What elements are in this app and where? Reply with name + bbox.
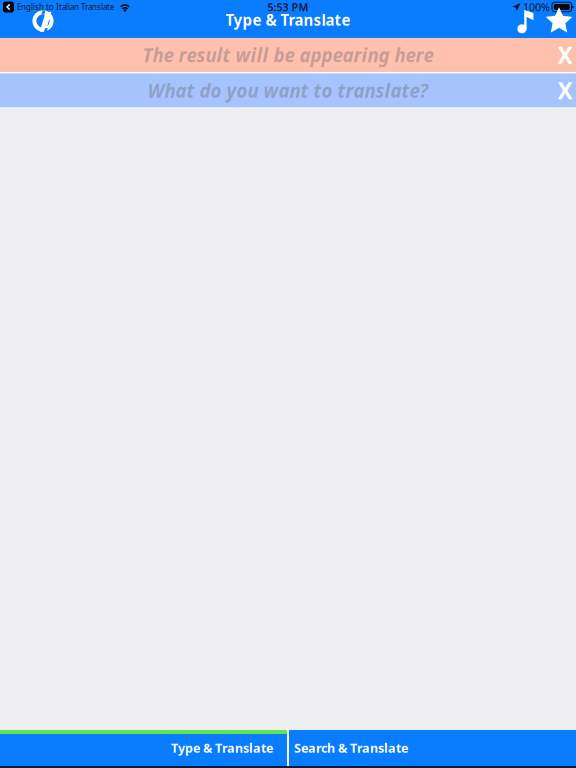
staticText: X: [557, 75, 572, 105]
button[interactable]: App logo: [0, 10, 62, 33]
button[interactable]: Clear input: [554, 73, 576, 107]
staticText: English to Italian Translate: [17, 2, 115, 12]
button[interactable]: Clear result: [554, 38, 576, 72]
staticText: 100%: [523, 0, 550, 14]
staticText: The result will be appearing here: [142, 43, 433, 67]
staticText: 5:53 PM: [267, 0, 308, 14]
button[interactable]: Search & Translate: [289, 730, 576, 766]
button[interactable]: Type & Translate: [0, 730, 287, 766]
staticText: What do you want to translate?: [147, 78, 428, 103]
staticText: Type & Translate: [225, 10, 350, 30]
button[interactable]: Favourite: [546, 10, 576, 33]
staticText: Search & Translate: [294, 740, 408, 756]
staticText: Type & Translate: [171, 740, 273, 756]
button[interactable]: Sound: [513, 10, 546, 33]
staticText: X: [557, 40, 572, 70]
